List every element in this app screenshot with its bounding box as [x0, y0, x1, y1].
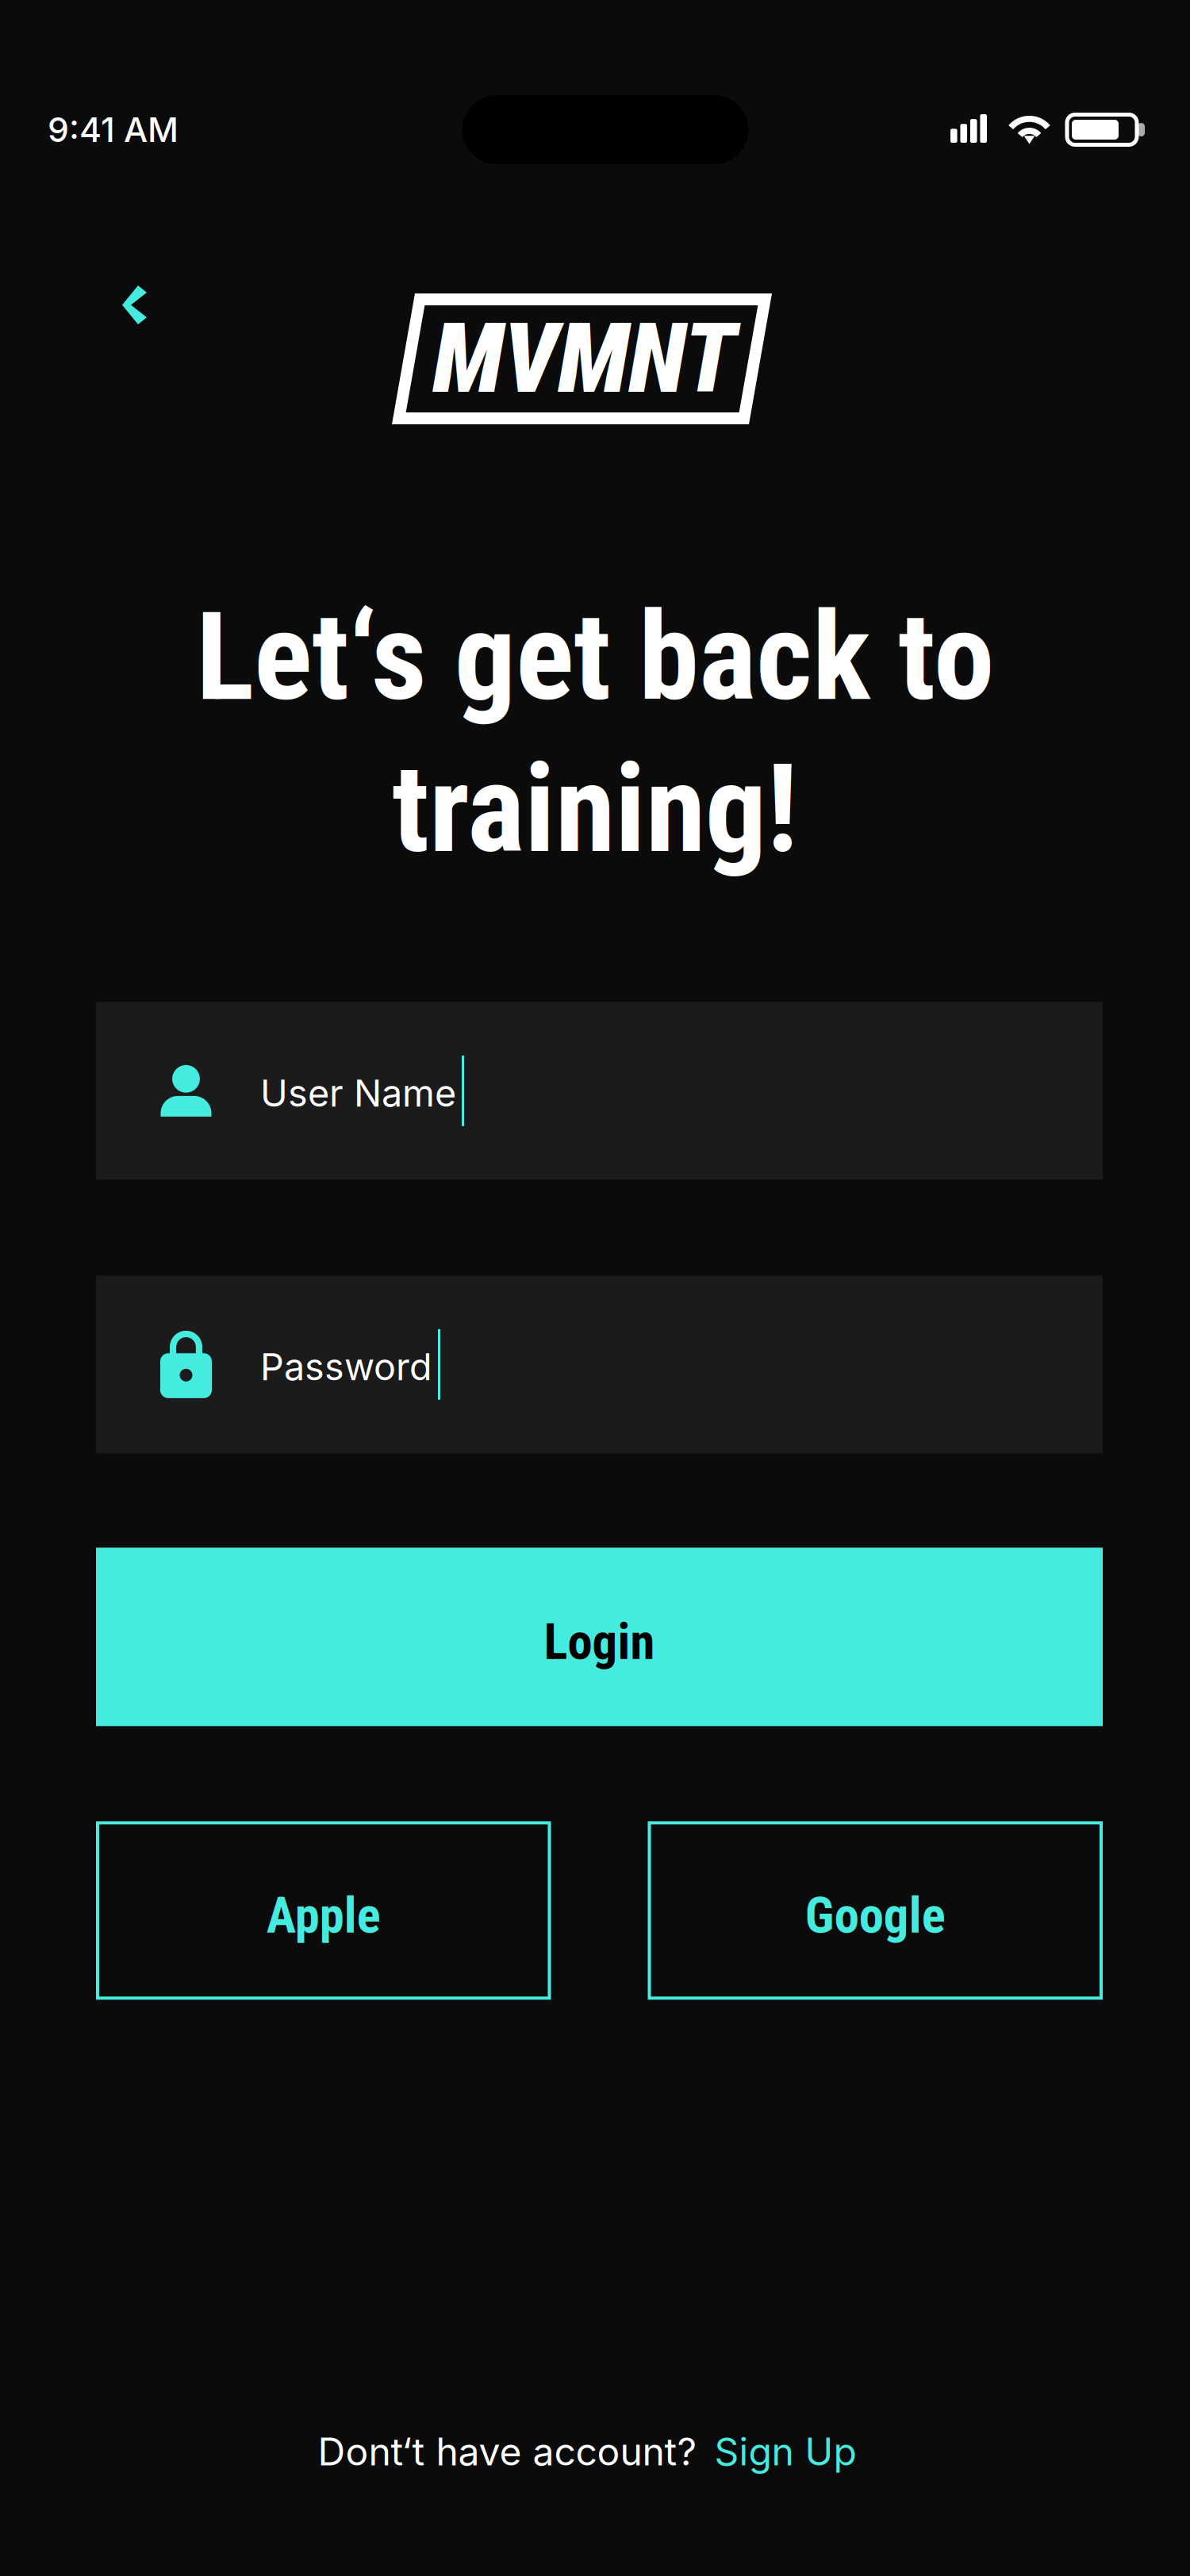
staticText: training!	[392, 738, 798, 881]
staticText: Sign Up	[714, 2428, 856, 2474]
staticText: Password	[260, 1344, 432, 1389]
button[interactable]: Back	[81, 286, 188, 432]
button[interactable]: Apple	[96, 1821, 551, 2000]
staticText: Let‘s get back to	[196, 586, 994, 729]
button[interactable]: Login	[96, 1548, 1103, 1726]
staticText: MVMNT	[433, 302, 736, 415]
staticText: Dont‘t have account?	[318, 2428, 708, 2474]
button[interactable]: Dont‘t have account?	[318, 2416, 872, 2487]
staticText: 9:41 AM	[48, 109, 178, 150]
staticText: Login	[544, 1613, 655, 1671]
staticText: Google	[805, 1887, 945, 1945]
button[interactable]: Google	[648, 1821, 1103, 2000]
staticText: User Name	[260, 1071, 456, 1116]
staticText: Apple	[266, 1887, 381, 1945]
